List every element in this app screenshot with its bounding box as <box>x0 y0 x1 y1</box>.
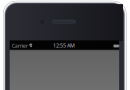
staticText: Carrier <box>12 42 28 49</box>
staticText: 12:55 AM <box>53 42 75 49</box>
